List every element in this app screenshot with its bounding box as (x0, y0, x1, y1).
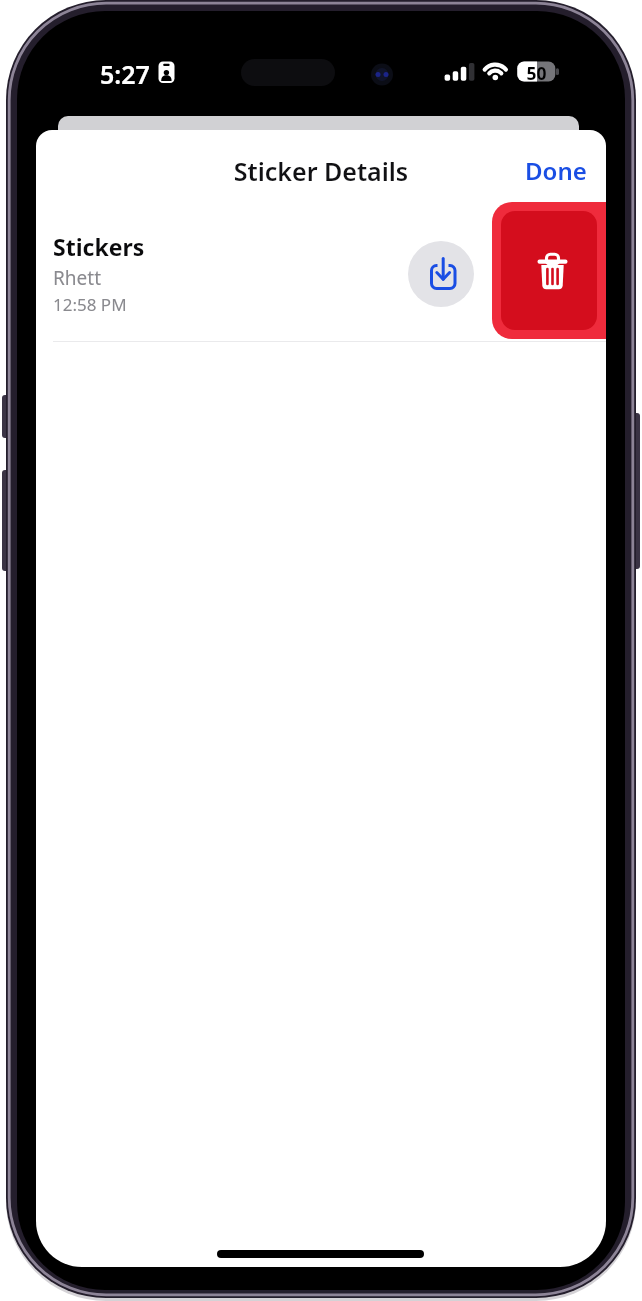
staticText: Rhett (53, 265, 101, 291)
staticText: 5:27 (100, 57, 150, 91)
button[interactable] (408, 241, 474, 307)
button[interactable] (501, 211, 597, 330)
button[interactable]: Done (487, 150, 587, 190)
staticText: 50 (517, 61, 556, 82)
staticText: Sticker Details (36, 154, 606, 190)
staticText: 12:58 PM (53, 293, 127, 316)
staticText: Done (525, 154, 587, 187)
button[interactable] (36, 205, 406, 340)
staticText: Stickers (53, 231, 145, 262)
